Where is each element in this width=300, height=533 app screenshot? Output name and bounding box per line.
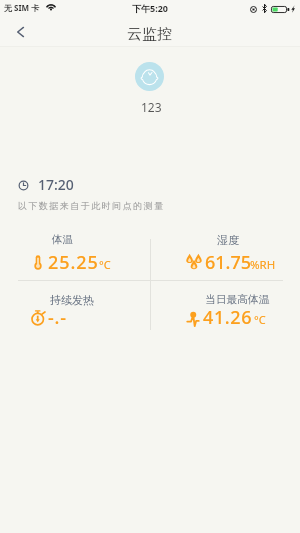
staticText: 下午5:20 [132,2,168,14]
staticText: 以下数据来自于此时间点的测量 [17,200,164,211]
staticText: °C [99,257,111,272]
staticText: %RH [250,257,276,273]
staticText: 持续发热 [50,293,94,307]
staticText: 41.26 [203,305,253,330]
staticText: 云监控 [127,25,172,44]
staticText: 61.75 [205,250,252,275]
staticText: 体温 [52,233,73,246]
staticText: 17:20 [38,175,74,194]
staticText: 湿度 [217,233,239,247]
button[interactable]: Back [5,22,37,47]
button[interactable]: 持续发热 [16,288,144,334]
staticText: 无 SIM 卡 [4,2,40,13]
button[interactable]: 湿度 [156,228,284,278]
staticText: °C [254,312,266,327]
button[interactable]: 当日最高体温 [156,288,284,334]
staticText: 123 [141,99,162,115]
button[interactable]: Device avatar [135,62,164,91]
staticText: 25.25 [48,250,99,275]
button[interactable]: 体温 [16,228,144,278]
staticText: -.- [48,305,67,330]
staticText: 当日最高体温 [205,293,270,307]
